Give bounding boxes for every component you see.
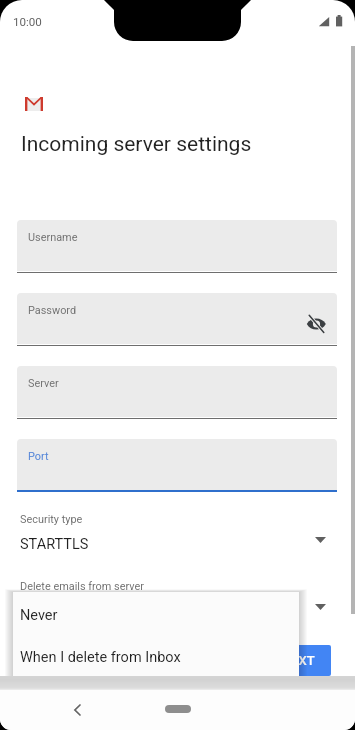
- staticText: NEXT: [282, 653, 315, 668]
- staticText: Security type: [20, 513, 83, 526]
- staticText: Port: [28, 450, 49, 463]
- button[interactable]: Never: [13, 594, 299, 636]
- button[interactable]: Back: [63, 692, 91, 720]
- staticText: Never: [20, 607, 58, 624]
- staticText: When I delete from Inbox: [20, 649, 181, 666]
- button[interactable]: Password: [17, 293, 337, 346]
- button[interactable]: Show password: [293, 304, 327, 338]
- other: Expand Security type: [315, 537, 326, 543]
- button[interactable]: Security type: [0, 511, 355, 556]
- button[interactable]: Delete emails from server: [0, 578, 355, 623]
- button[interactable]: Username: [17, 220, 337, 273]
- button[interactable]: Home: [165, 705, 191, 713]
- staticText: Incoming server settings: [21, 132, 252, 157]
- button[interactable]: NEXT: [265, 645, 331, 676]
- staticText: Never: [20, 603, 58, 620]
- staticText: Server: [28, 377, 59, 390]
- staticText: 10:00: [13, 15, 42, 29]
- staticText: Delete emails from server: [20, 580, 144, 593]
- staticText: Username: [28, 231, 78, 244]
- staticText: STARTTLS: [20, 536, 89, 553]
- button[interactable]: When I delete from Inbox: [13, 636, 299, 678]
- other: Expand Delete emails from server: [315, 604, 326, 610]
- button[interactable]: Server: [17, 366, 337, 419]
- staticText: Password: [28, 304, 77, 317]
- button[interactable]: Port: [17, 439, 337, 492]
